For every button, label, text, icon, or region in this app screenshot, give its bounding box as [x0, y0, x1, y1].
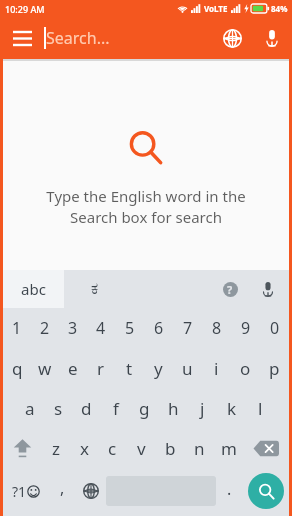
button[interactable]: n [185, 428, 214, 468]
staticText: abc [21, 279, 46, 299]
staticText: 7 [183, 317, 193, 339]
staticText: w [38, 357, 52, 380]
staticText: ?1 [12, 482, 27, 501]
button[interactable]: c [98, 428, 127, 468]
button[interactable]: s [44, 388, 72, 428]
button[interactable]: w [31, 348, 59, 388]
button[interactable]: . [216, 468, 243, 514]
button[interactable]: abc [3, 270, 64, 308]
staticText: 10:29 AM [5, 3, 45, 15]
staticText: b [165, 437, 176, 460]
button[interactable]: Voice search [252, 18, 292, 58]
staticText: 5 [125, 317, 135, 339]
staticText: u [182, 357, 193, 380]
staticText: Search... [46, 27, 110, 49]
staticText: 4 [96, 317, 106, 339]
button[interactable]: p [260, 348, 289, 388]
button[interactable]: y [144, 348, 173, 388]
button[interactable]: b [156, 428, 185, 468]
button[interactable]: 9 [231, 308, 260, 348]
button[interactable]: Voice input [249, 270, 287, 308]
staticText: j [200, 397, 205, 420]
button[interactable]: g [130, 388, 159, 428]
staticText: r [97, 357, 105, 380]
staticText: 1 [12, 317, 22, 339]
button[interactable]: u [173, 348, 202, 388]
staticText: z [52, 437, 60, 460]
staticText: 0 [270, 317, 280, 339]
staticText: VoLTE [204, 3, 228, 14]
button[interactable]: Search [248, 473, 284, 509]
button[interactable]: 8 [202, 308, 231, 348]
button[interactable]: z [42, 428, 70, 468]
staticText: 6 [154, 317, 164, 339]
button[interactable]: Switch keyboard language [76, 468, 106, 514]
button[interactable]: 6 [144, 308, 173, 348]
staticText: m [221, 437, 237, 460]
button[interactable]: Search... [44, 17, 212, 59]
staticText: h [168, 397, 179, 420]
staticText: n [194, 437, 205, 460]
button[interactable]: 5 [115, 308, 144, 348]
staticText: 84% [271, 3, 288, 14]
staticText: p [269, 357, 280, 380]
button[interactable]: ಕ [64, 270, 126, 308]
staticText: ? [227, 282, 233, 297]
button[interactable]: 4 [87, 308, 115, 348]
button[interactable]: r [87, 348, 115, 388]
staticText: d [81, 397, 92, 420]
staticText: , [60, 477, 65, 499]
staticText: Type the English word in the Search box … [23, 186, 269, 228]
button[interactable]: x [70, 428, 98, 468]
button[interactable]: q [3, 348, 31, 388]
staticText: 9 [241, 317, 251, 339]
staticText: s [54, 397, 63, 420]
staticText: 3 [68, 317, 78, 339]
staticText: v [137, 437, 146, 460]
staticText: x [80, 437, 89, 460]
button[interactable]: d [72, 388, 101, 428]
staticText: a [25, 397, 35, 420]
staticText: g [139, 397, 150, 420]
button[interactable]: Backspace [243, 428, 289, 468]
staticText: 2 [40, 317, 50, 339]
staticText: y [154, 357, 163, 380]
button[interactable]: Change language [212, 18, 252, 58]
staticText: l [258, 397, 263, 420]
button[interactable]: k [217, 388, 246, 428]
staticText: e [68, 357, 78, 380]
button[interactable]: f [101, 388, 130, 428]
staticText: o [240, 357, 251, 380]
button[interactable]: i [202, 348, 231, 388]
button[interactable]: o [231, 348, 260, 388]
staticText: i [214, 357, 219, 380]
staticText: k [227, 397, 237, 420]
button[interactable]: ?1 [3, 468, 49, 514]
button[interactable]: 0 [260, 308, 289, 348]
button[interactable]: Help [211, 270, 249, 308]
button[interactable]: 3 [59, 308, 87, 348]
staticText: . [227, 478, 232, 500]
button[interactable]: t [115, 348, 144, 388]
button[interactable]: l [246, 388, 275, 428]
staticText: ಕ [91, 281, 99, 297]
button[interactable]: 1 [3, 308, 31, 348]
button[interactable]: e [59, 348, 87, 388]
staticText: c [108, 437, 117, 460]
button[interactable]: 7 [173, 308, 202, 348]
staticText: f [113, 397, 119, 420]
staticText: t [126, 357, 133, 380]
staticText: q [12, 357, 23, 380]
button[interactable]: Shift [3, 428, 42, 468]
button[interactable]: 2 [31, 308, 59, 348]
button[interactable]: , [49, 468, 76, 514]
button[interactable]: j [188, 388, 217, 428]
staticText: 8 [212, 317, 222, 339]
button[interactable]: Open navigation menu [0, 17, 44, 59]
button[interactable]: m [214, 428, 243, 468]
button[interactable]: h [159, 388, 188, 428]
button[interactable]: v [127, 428, 156, 468]
button[interactable]: a [16, 388, 44, 428]
